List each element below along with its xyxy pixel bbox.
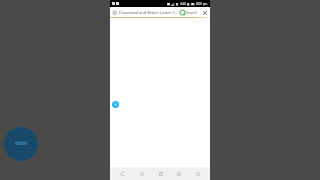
staticText: Download and Watch Latest S… bbox=[119, 10, 178, 15]
button[interactable]: Overview bbox=[191, 167, 204, 180]
staticText: 4:45 bbox=[180, 2, 186, 6]
button[interactable]: Close bbox=[201, 9, 208, 16]
button[interactable]: Tabs bbox=[135, 167, 148, 180]
button[interactable]: Search bbox=[179, 9, 199, 16]
button[interactable]: Loading indicator bbox=[112, 101, 119, 108]
staticText: Search bbox=[186, 10, 198, 15]
button[interactable]: Recents bbox=[172, 167, 185, 180]
button[interactable]: Back bbox=[116, 167, 129, 180]
button[interactable]: Home bbox=[154, 167, 167, 180]
staticText: 8:00 pm bbox=[196, 2, 208, 6]
button[interactable]: Site icon bbox=[112, 10, 117, 15]
